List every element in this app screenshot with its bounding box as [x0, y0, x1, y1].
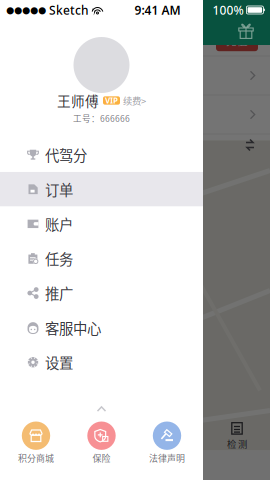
- staticText: ●●●●●: [6, 5, 46, 15]
- staticText: 9:41 AM: [134, 2, 180, 18]
- staticText: 积分商城: [18, 451, 54, 464]
- button[interactable]: 订单: [0, 172, 203, 207]
- staticText: 客服中心: [45, 317, 101, 338]
- button[interactable]: Expand: [86, 405, 116, 412]
- staticText: 账户: [45, 213, 73, 234]
- button[interactable]: 法律声明: [134, 421, 200, 464]
- button[interactable]: 代驾分: [0, 137, 203, 172]
- staticText: 王师傅: [57, 91, 99, 110]
- staticText: Sketch: [49, 2, 89, 18]
- button[interactable]: 账户: [0, 207, 203, 241]
- button[interactable]: 任务: [0, 241, 203, 276]
- button[interactable]: 保险: [69, 421, 134, 464]
- staticText: 设置: [45, 352, 73, 373]
- staticText: 充值: [226, 33, 248, 48]
- staticText: 代驾分: [45, 144, 87, 165]
- staticText: 任务: [45, 248, 73, 269]
- button[interactable]: 积分商城: [3, 421, 69, 464]
- button[interactable]: Gifts: [238, 23, 270, 45]
- staticText: 推广: [45, 283, 73, 303]
- staticText: 100%: [212, 2, 243, 18]
- button[interactable]: 设置: [0, 345, 203, 380]
- staticText: 检 测: [227, 437, 247, 450]
- staticText: 工号：666666: [73, 112, 130, 124]
- button[interactable]: 推广: [0, 276, 203, 310]
- staticText: 保险: [92, 451, 110, 464]
- button[interactable]: 充值: [216, 30, 258, 51]
- staticText: VIP: [105, 95, 118, 106]
- staticText: 续费>: [123, 94, 146, 107]
- staticText: 法律声明: [149, 451, 185, 464]
- staticText: 订单: [45, 179, 73, 200]
- button[interactable]: 客服中心: [0, 310, 203, 345]
